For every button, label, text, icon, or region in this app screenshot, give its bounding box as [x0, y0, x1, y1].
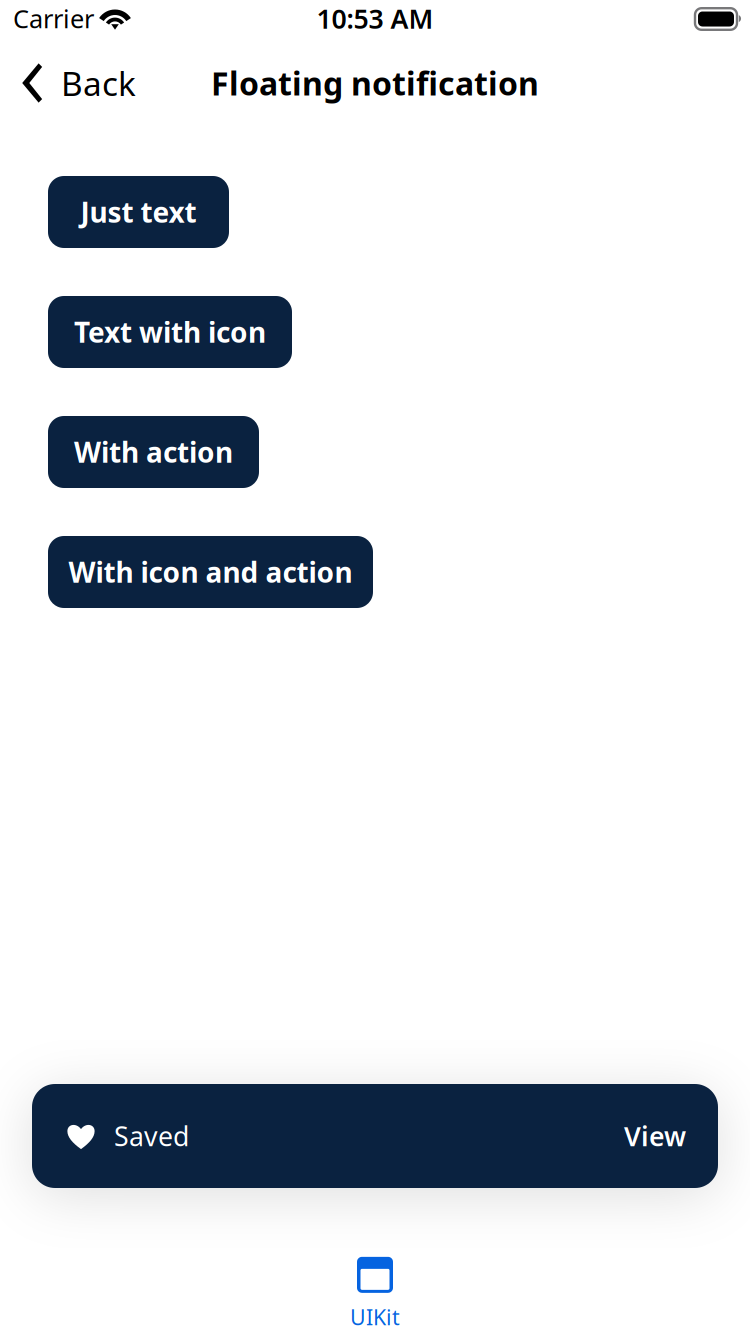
staticText: With icon and action: [68, 553, 352, 591]
staticText: Carrier: [13, 2, 94, 35]
button[interactable]: UIKit: [0, 1242, 750, 1334]
staticText: Text with icon: [74, 313, 266, 351]
staticText: 10:53 AM: [316, 1, 433, 36]
staticText: Back: [61, 61, 136, 105]
button[interactable]: Back: [0, 53, 150, 113]
staticText: With action: [74, 433, 233, 471]
staticText: Saved: [114, 1118, 189, 1154]
button[interactable]: With icon and action: [48, 536, 373, 608]
button[interactable]: Text with icon: [48, 296, 292, 368]
staticText: UIKit: [350, 1303, 400, 1331]
button[interactable]: Just text: [48, 176, 229, 248]
button[interactable]: With action: [48, 416, 259, 488]
staticText: View: [624, 1118, 686, 1154]
staticText: Floating notification: [211, 62, 539, 104]
button[interactable]: View: [600, 1104, 686, 1168]
staticText: Just text: [80, 193, 196, 231]
